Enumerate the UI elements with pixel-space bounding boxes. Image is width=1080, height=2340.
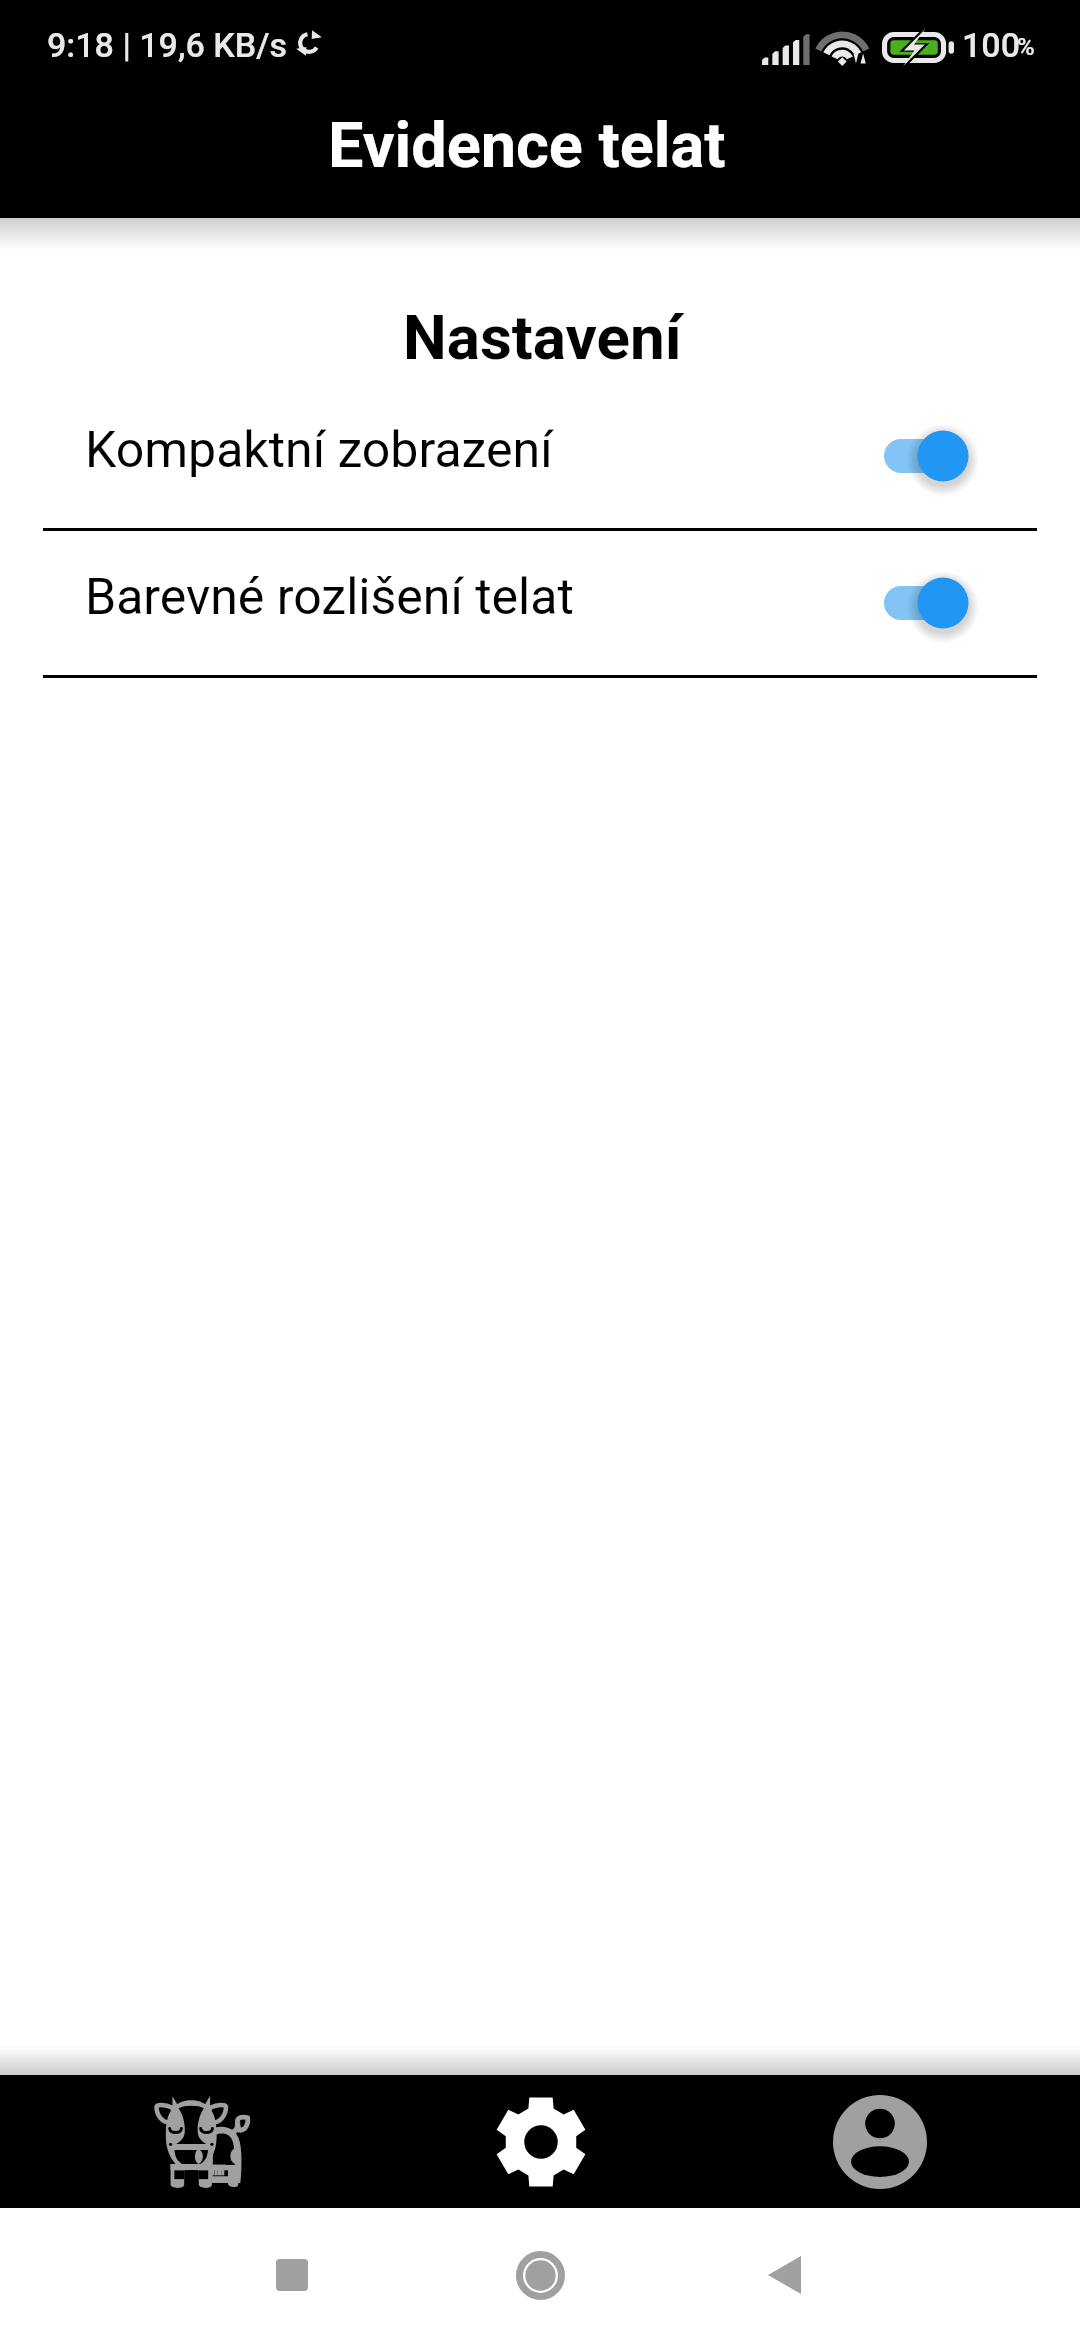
button[interactable]: Kompaktní zobrazení xyxy=(0,385,1080,531)
staticText: Evidence telat xyxy=(328,109,726,183)
button[interactable]: Účet xyxy=(710,2075,1049,2208)
staticText: % xyxy=(1017,33,1035,61)
button[interactable]: Barevné rozlišení telat xyxy=(0,532,1080,678)
button[interactable]: Recents xyxy=(276,2259,308,2291)
staticText: Nastavení xyxy=(403,301,682,374)
staticText: Barevné rozlišení telat xyxy=(85,568,574,627)
button[interactable]: Nastavení xyxy=(371,2075,710,2208)
button[interactable]: Kompaktní zobrazení zapnuto xyxy=(884,424,994,488)
staticText: Kompaktní zobrazení xyxy=(85,421,553,480)
staticText: 9:18 | 19,6 KB/s xyxy=(47,25,288,65)
button[interactable]: Telata xyxy=(33,2075,372,2208)
button[interactable]: Back xyxy=(768,2256,801,2294)
button[interactable]: Home xyxy=(516,2251,565,2300)
button[interactable]: Barevné rozlišení telat zapnuto xyxy=(884,571,994,635)
staticText: 100 xyxy=(962,25,1020,65)
